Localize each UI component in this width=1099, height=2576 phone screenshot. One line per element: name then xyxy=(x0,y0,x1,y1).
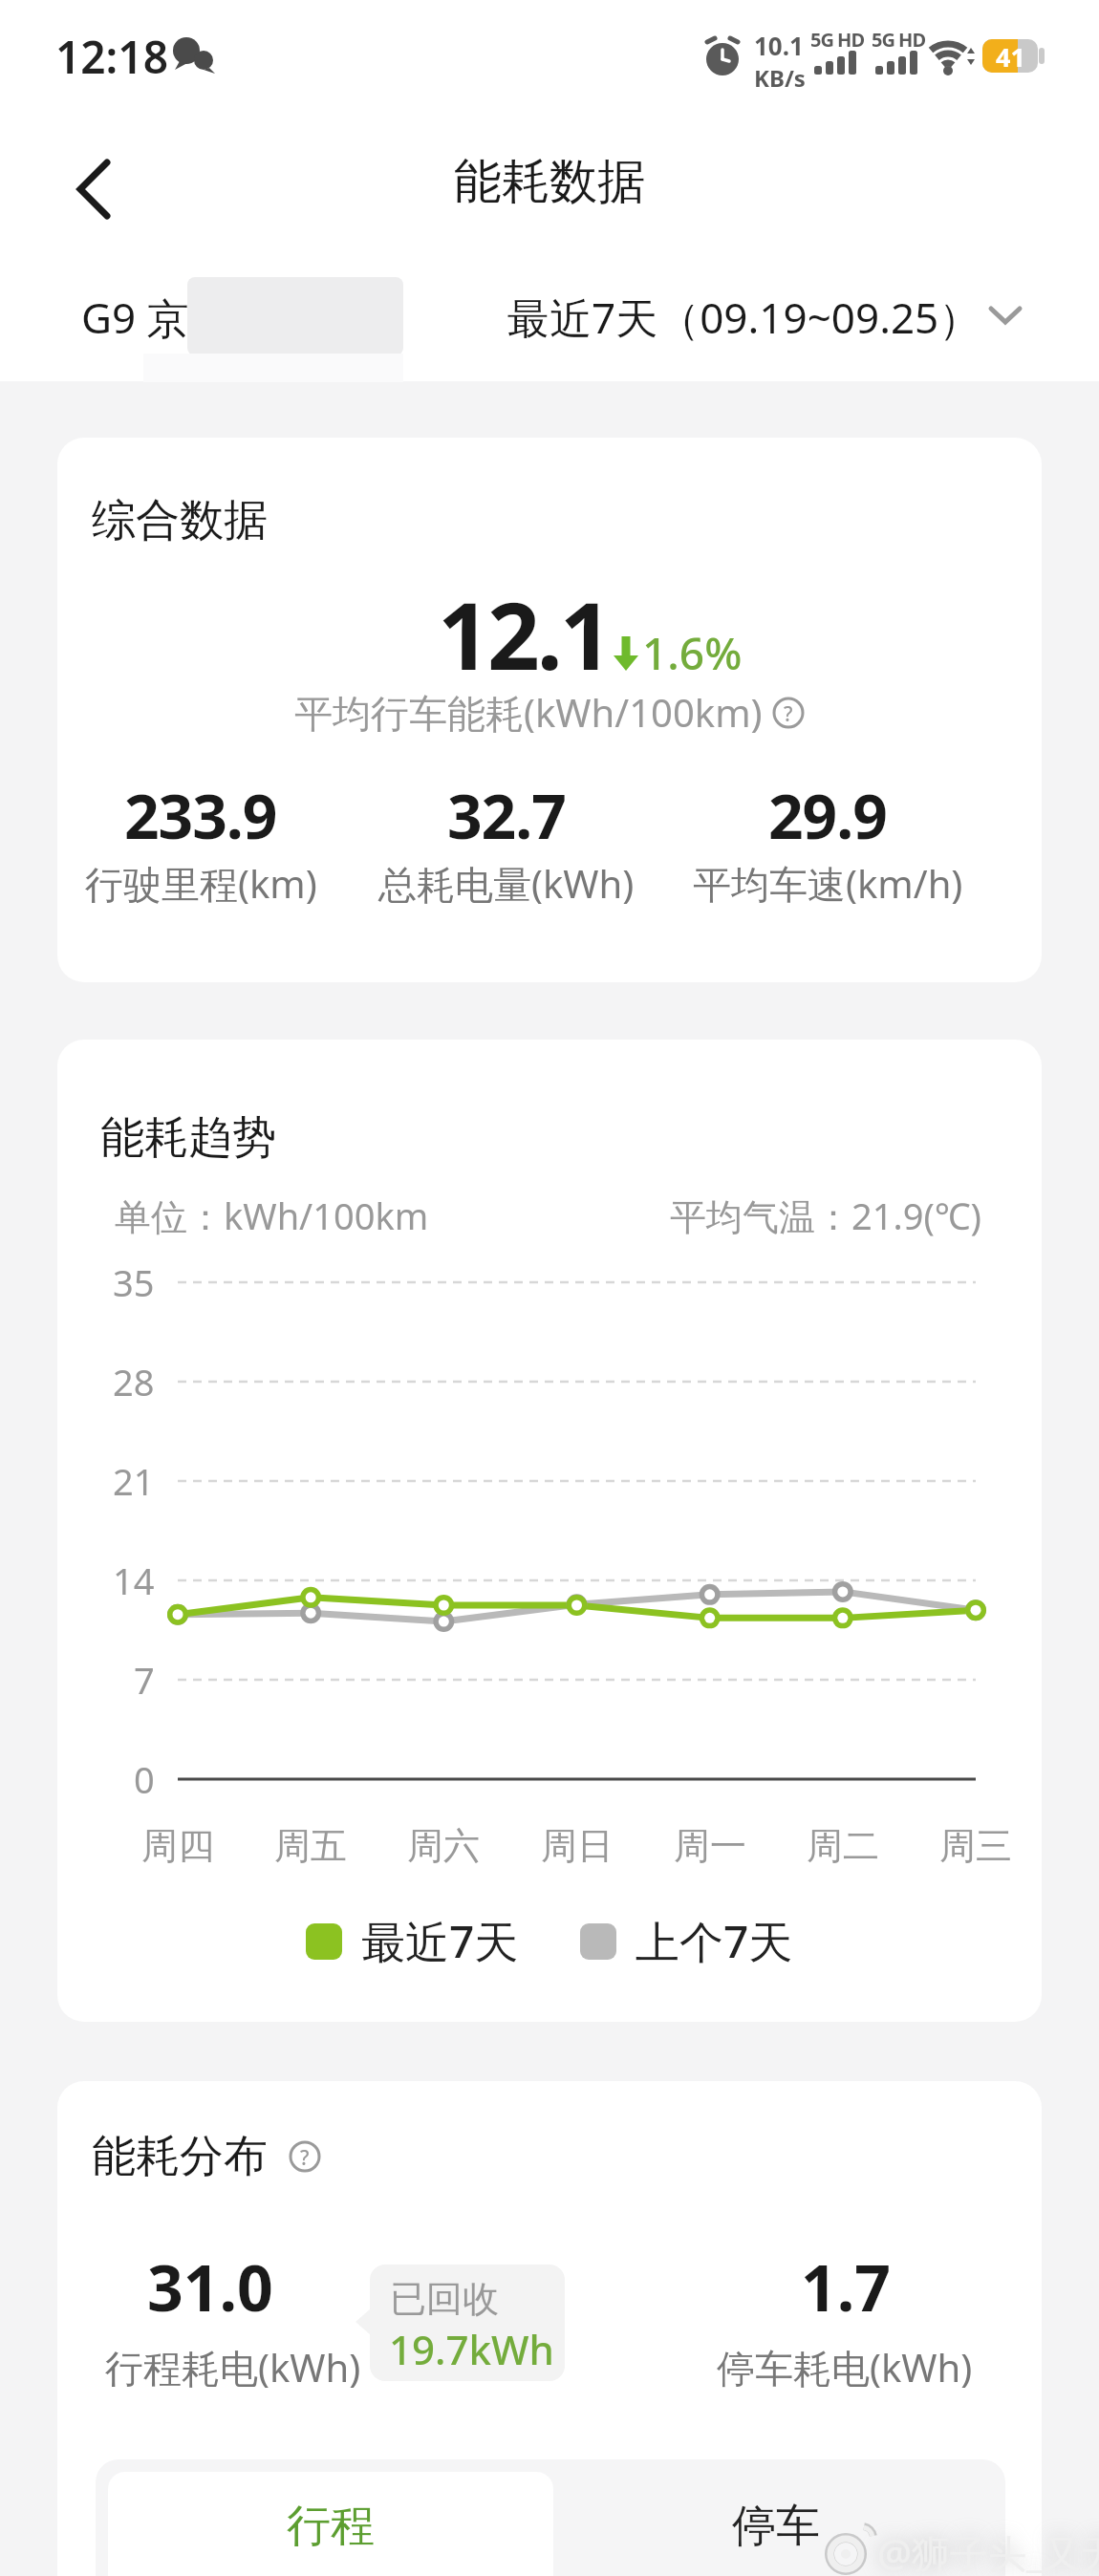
staticText: ? xyxy=(300,2143,310,2171)
staticText: 周一 xyxy=(674,1823,746,1869)
staticText: 14 xyxy=(113,1556,155,1605)
staticText: 行程耗电(kWh) xyxy=(105,2341,361,2394)
staticText: 233.9 xyxy=(124,774,277,857)
staticText: 停车耗电(kWh) xyxy=(717,2341,973,2394)
staticText: 35 xyxy=(113,1257,155,1307)
button[interactable]: 停车 xyxy=(553,2472,999,2576)
staticText: 周日 xyxy=(541,1823,614,1869)
staticText: 32.7 xyxy=(447,774,566,857)
staticText: 单位：kWh/100km xyxy=(115,1191,429,1240)
staticText: 停车 xyxy=(732,2499,820,2554)
staticText: 平均气温：21.9(℃) xyxy=(670,1191,982,1240)
button[interactable] xyxy=(57,151,130,227)
staticText: G9 京A xyxy=(81,289,216,346)
staticText: 最近7天 xyxy=(361,1911,519,1971)
staticText: 平均行车能耗(kWh/100km) xyxy=(294,686,763,739)
staticText: ? xyxy=(784,699,793,727)
staticText: 10.1 xyxy=(754,29,804,62)
staticText: 5G HD xyxy=(872,27,926,53)
staticText: 1.7 xyxy=(801,2243,892,2329)
staticText: 周三 xyxy=(939,1823,1012,1869)
staticText: 12:18 xyxy=(55,27,168,87)
button[interactable]: 行程 xyxy=(108,2472,553,2576)
staticText: 最近7天（09.19~09.25） xyxy=(507,289,981,346)
staticText: 5G HD xyxy=(810,27,865,53)
staticText: 综合数据 xyxy=(92,493,268,548)
staticText: 0 xyxy=(134,1754,155,1804)
staticText: 总耗电量(kWh) xyxy=(378,857,635,910)
staticText: 能耗数据 xyxy=(454,152,645,212)
staticText: 周二 xyxy=(807,1823,879,1869)
staticText: 周五 xyxy=(274,1823,347,1869)
staticText: 平均车速(km/h) xyxy=(693,857,963,910)
staticText: 1.6% xyxy=(642,623,743,683)
button[interactable]: 最近7天（09.19~09.25） xyxy=(507,289,1024,346)
staticText: 12.1 xyxy=(438,571,610,697)
staticText: 19.7kWh xyxy=(389,2322,554,2376)
staticText: 28 xyxy=(113,1357,155,1406)
staticText: 41 xyxy=(996,39,1025,73)
staticText: KB/s xyxy=(754,62,806,94)
staticText: 29.9 xyxy=(768,774,887,857)
staticText: 能耗趋势 xyxy=(100,1110,276,1166)
staticText: @狮子头_又无助 xyxy=(877,2526,1099,2576)
staticText: 行驶里程(km) xyxy=(85,857,317,910)
staticText: 已回收 xyxy=(390,2276,499,2322)
staticText: 能耗分布 xyxy=(92,2129,268,2184)
staticText: 周六 xyxy=(407,1823,480,1869)
staticText: 21 xyxy=(113,1456,155,1506)
staticText: 周四 xyxy=(141,1823,214,1869)
staticText: 31.0 xyxy=(147,2243,273,2329)
staticText: 行程 xyxy=(287,2499,375,2554)
staticText: 上个7天 xyxy=(636,1911,793,1971)
staticText: 7 xyxy=(134,1655,155,1705)
